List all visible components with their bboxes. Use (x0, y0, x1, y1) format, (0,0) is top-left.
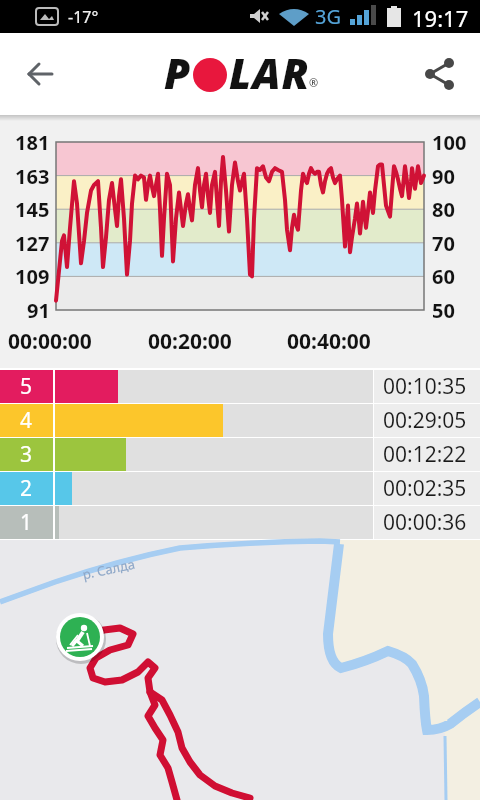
staticText: 00:00:00 (8, 327, 92, 356)
button[interactable] (412, 46, 468, 102)
staticText: 181 (15, 129, 50, 156)
staticText: 00:00:36 (383, 508, 467, 537)
staticText: 100 (432, 129, 467, 156)
staticText: P (164, 44, 191, 101)
button[interactable] (12, 46, 68, 102)
staticText: 91 (27, 297, 50, 324)
staticText: 50 (432, 297, 455, 324)
staticText: 00:02:35 (383, 474, 467, 503)
staticText: 4 (20, 406, 33, 435)
staticText: 127 (15, 230, 50, 257)
button[interactable]: 5 (0, 370, 480, 403)
button[interactable]: 3 (0, 438, 480, 471)
staticText: 00:10:35 (383, 372, 467, 401)
staticText: 109 (15, 263, 50, 290)
button[interactable]: 2 (0, 472, 480, 505)
staticText: -17° (68, 6, 99, 28)
staticText: 145 (15, 196, 50, 223)
staticText: 3G (315, 3, 341, 30)
staticText: р. Салда (81, 555, 137, 583)
staticText: 80 (432, 196, 455, 223)
staticText: 70 (432, 230, 455, 257)
staticText: 00:40:00 (287, 327, 371, 356)
staticText: 00:29:05 (383, 406, 467, 435)
staticText: 1 (20, 508, 33, 537)
staticText: 00:12:22 (383, 440, 467, 469)
staticText: 3 (20, 440, 33, 469)
staticText: 00:20:00 (148, 327, 232, 356)
button[interactable]: 4 (0, 404, 480, 437)
button[interactable]: р. Салда (0, 540, 480, 800)
staticText: ® (309, 75, 319, 90)
staticText: 60 (432, 263, 455, 290)
staticText: 5 (20, 372, 33, 401)
staticText: 19:17 (412, 3, 469, 33)
staticText: 90 (432, 163, 455, 190)
staticText: 2 (20, 474, 33, 503)
staticText: LAR (229, 44, 310, 101)
staticText: 163 (15, 163, 50, 190)
button[interactable]: 1 (0, 506, 480, 539)
